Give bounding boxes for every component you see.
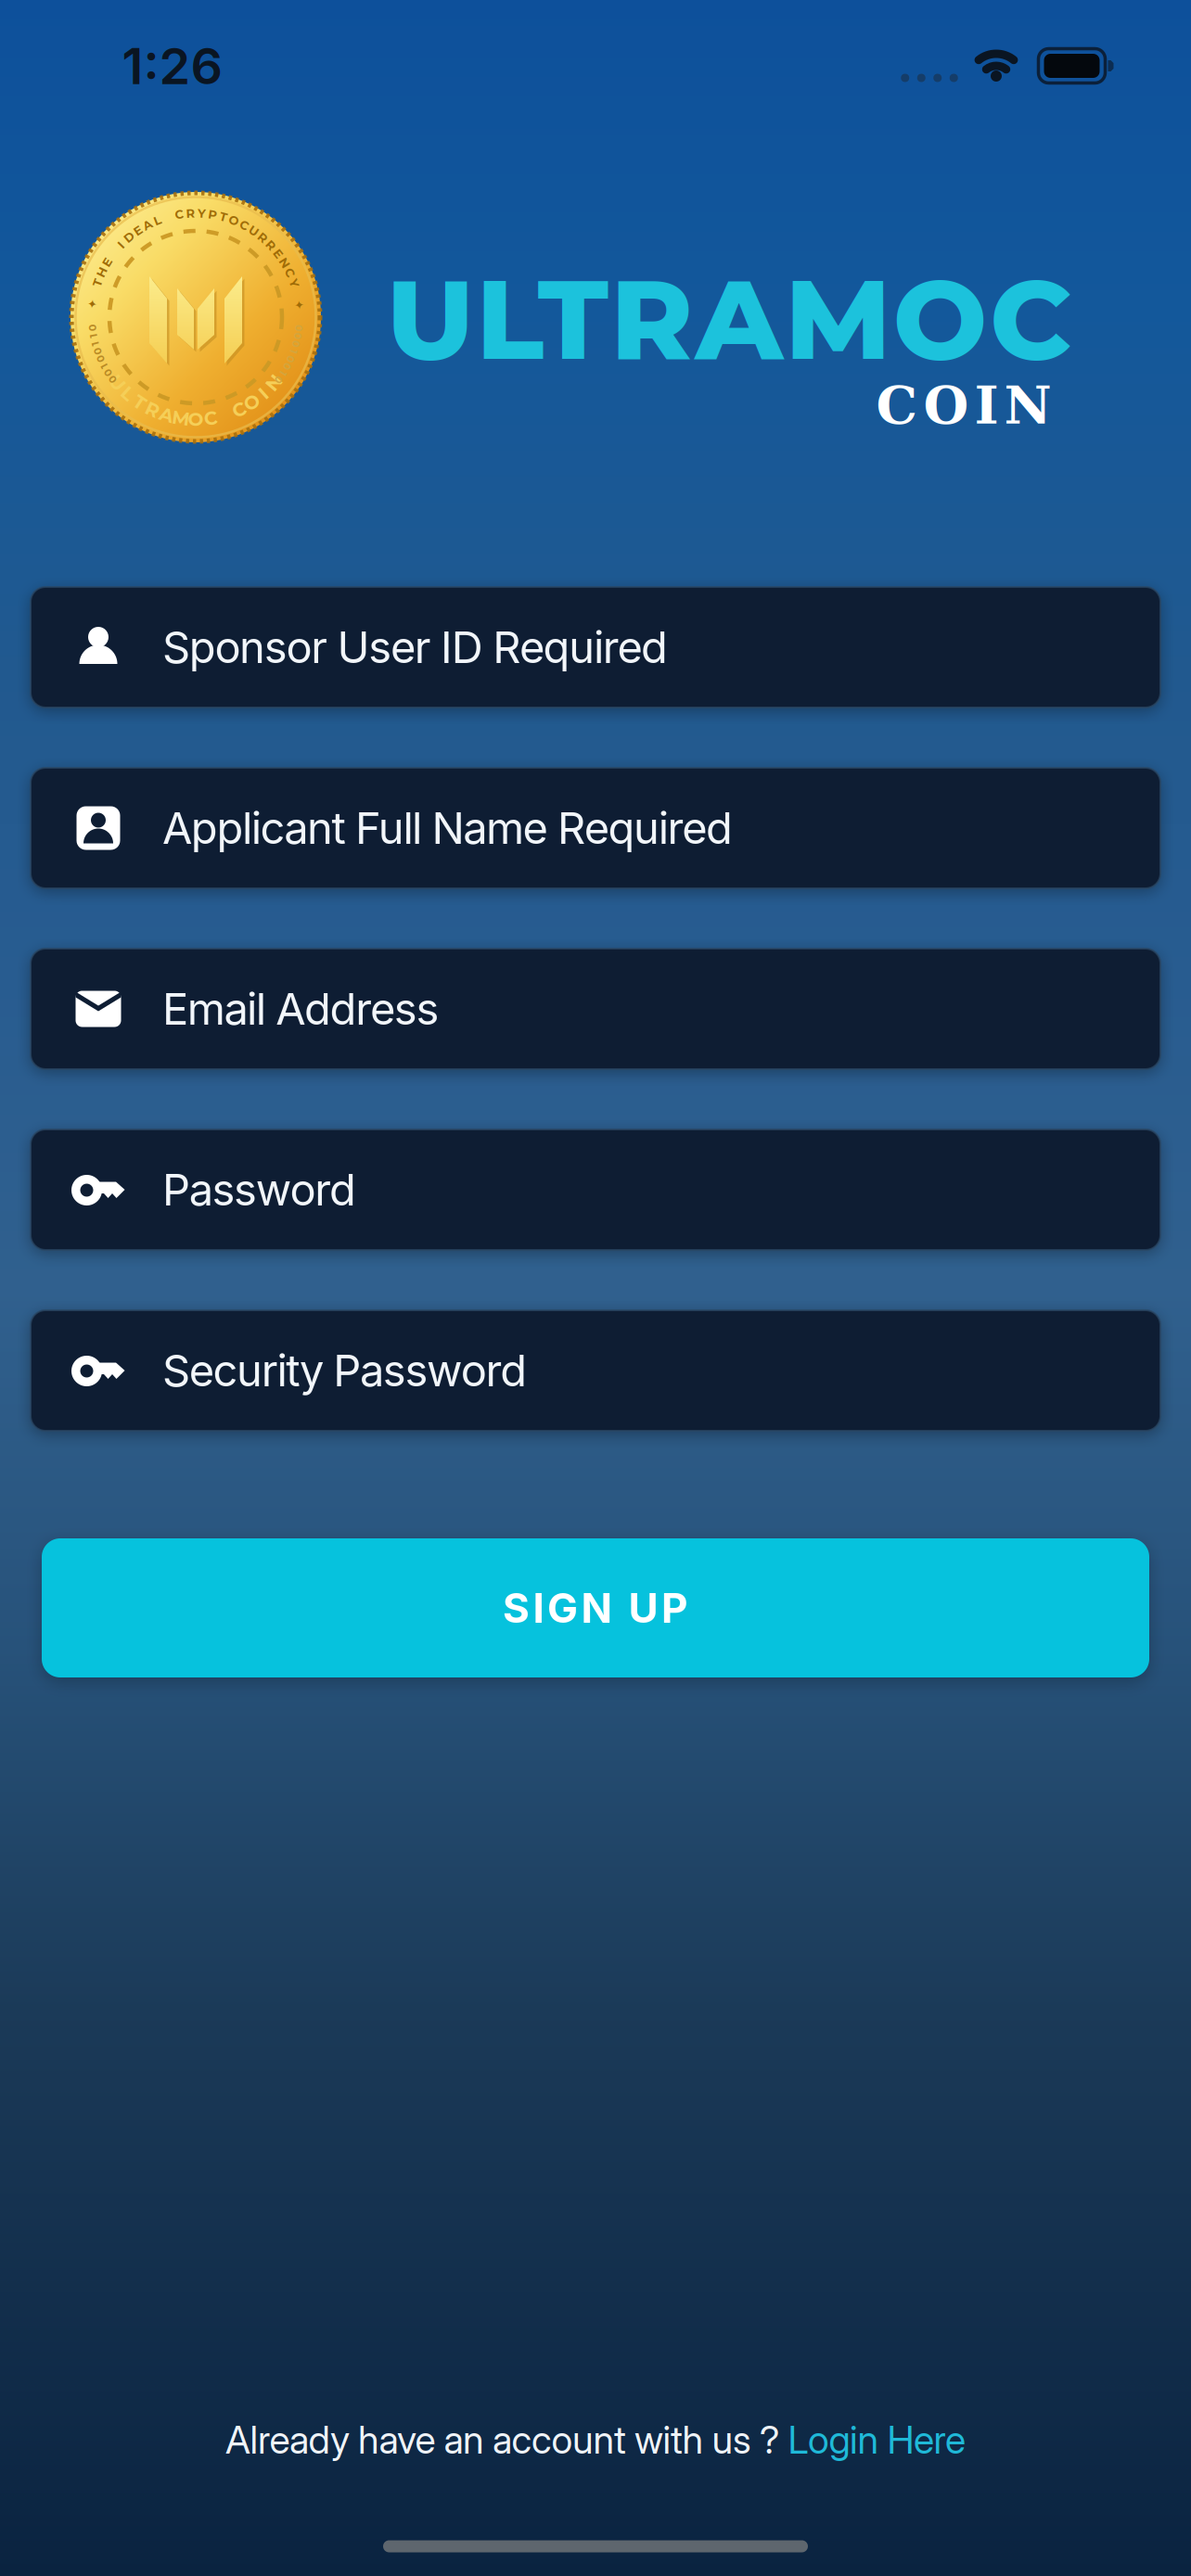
staticText: E: [192, 206, 199, 220]
staticText: U: [188, 408, 203, 430]
button[interactable]: Login Here: [788, 2417, 966, 2463]
staticText: E: [192, 206, 199, 220]
staticText: Already have an account with us ?: [225, 2417, 788, 2463]
staticText: COIN: [876, 375, 1051, 436]
staticText: ✦: [191, 207, 200, 220]
staticText: I: [192, 408, 199, 430]
button[interactable]: Applicant Full Name Required: [31, 768, 1160, 888]
staticText: C: [192, 206, 200, 220]
staticText: 0: [192, 207, 199, 219]
staticText: [194, 206, 198, 220]
staticText: O: [188, 408, 204, 430]
button[interactable]: SIGN UP: [42, 1538, 1149, 1677]
staticText: [194, 206, 198, 220]
staticText: [194, 206, 198, 220]
staticText: 1: [194, 207, 198, 219]
staticText: 1:26: [122, 36, 223, 96]
staticText: A: [189, 408, 203, 430]
staticText: 0: [192, 207, 199, 219]
staticText: Security Password: [162, 1344, 527, 1397]
staticText: Y: [192, 206, 199, 220]
staticText: P: [192, 206, 200, 220]
staticText: 1: [194, 207, 198, 219]
staticText: Applicant Full Name Required: [162, 802, 733, 854]
staticText: O: [188, 408, 204, 430]
staticText: 0: [192, 207, 199, 219]
staticText: L: [190, 408, 201, 430]
staticText: 0: [192, 207, 199, 219]
button[interactable]: Password: [31, 1129, 1160, 1250]
button[interactable]: Security Password: [31, 1310, 1160, 1431]
staticText: O: [191, 206, 201, 220]
staticText: ULTRAMOC: [387, 251, 1072, 387]
staticText: 0: [192, 207, 199, 219]
staticText: T: [192, 206, 199, 220]
staticText: R: [192, 206, 200, 220]
staticText: 0: [192, 207, 199, 219]
staticText: 1: [194, 207, 198, 219]
staticText: [193, 408, 198, 430]
staticText: 0: [192, 207, 199, 219]
staticText: C: [192, 206, 200, 220]
staticText: I: [194, 206, 198, 220]
staticText: R: [192, 206, 200, 220]
staticText: R: [192, 206, 200, 220]
staticText: 0: [192, 207, 199, 219]
staticText: C: [189, 408, 202, 430]
staticText: L: [192, 206, 199, 220]
staticText: 1: [194, 207, 198, 219]
staticText: [194, 206, 198, 220]
staticText: E: [192, 206, 199, 220]
staticText: 1: [194, 207, 198, 219]
staticText: N: [191, 206, 200, 220]
staticText: T: [190, 408, 201, 430]
staticText: 0: [192, 207, 199, 219]
staticText: Y: [192, 206, 199, 220]
staticText: Password: [162, 1163, 356, 1216]
staticText: A: [191, 206, 200, 220]
staticText: Sponsor User ID Required: [162, 621, 668, 674]
staticText: R: [189, 408, 203, 430]
button[interactable]: Sponsor User ID Required: [31, 587, 1160, 708]
staticText: 0: [192, 207, 199, 219]
staticText: SIGN UP: [503, 1583, 688, 1633]
staticText: D: [191, 206, 200, 220]
staticText: T: [192, 206, 199, 220]
staticText: M: [187, 408, 205, 430]
staticText: Email Address: [162, 983, 439, 1035]
staticText: 0: [192, 207, 199, 219]
staticText: Login Here: [788, 2417, 966, 2463]
staticText: C: [189, 408, 202, 430]
staticText: N: [188, 408, 203, 430]
staticText: U: [191, 206, 200, 220]
button[interactable]: Email Address: [31, 949, 1160, 1069]
staticText: H: [191, 206, 200, 220]
staticText: ✦: [191, 207, 200, 220]
staticText: C: [192, 206, 200, 220]
